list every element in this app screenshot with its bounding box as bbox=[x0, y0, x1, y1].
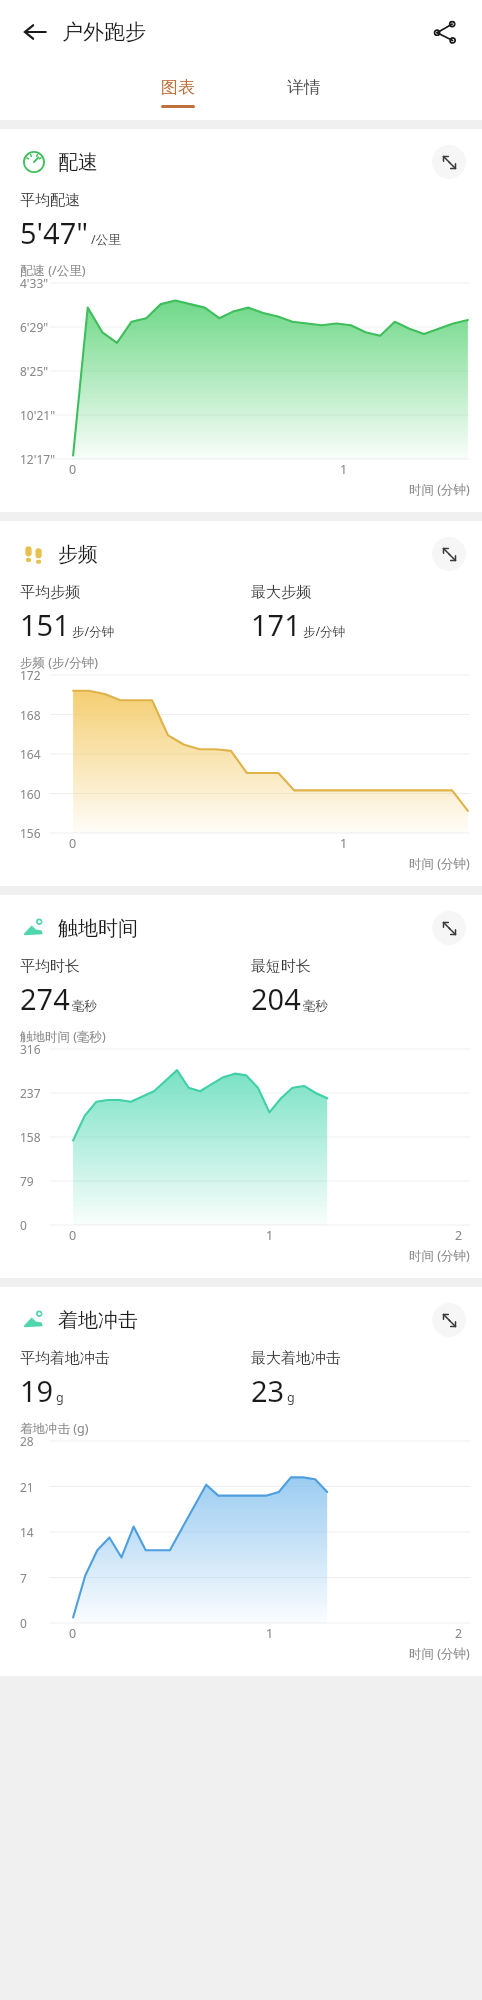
staticText: 图表 bbox=[161, 77, 195, 98]
staticText: 1 bbox=[340, 835, 348, 852]
staticText: 时间 (分钟) bbox=[409, 1645, 470, 1662]
staticText: 14 bbox=[20, 1524, 34, 1540]
staticText: 步频 bbox=[58, 542, 98, 567]
staticText: 时间 (分钟) bbox=[409, 855, 470, 872]
staticText: 毫秒 bbox=[303, 998, 328, 1014]
staticText: 21 bbox=[20, 1479, 34, 1495]
staticText: 时间 (分钟) bbox=[409, 481, 470, 498]
button[interactable]: 图表 bbox=[161, 77, 195, 108]
staticText: 28 bbox=[20, 1433, 34, 1449]
staticText: 158 bbox=[20, 1129, 41, 1145]
staticText: 配速 (/公里) bbox=[20, 262, 86, 279]
staticText: 79 bbox=[20, 1173, 34, 1189]
staticText: 平均着地冲击 bbox=[20, 1349, 110, 1368]
staticText: 最短时长 bbox=[251, 957, 311, 976]
staticText: 12'17" bbox=[20, 451, 56, 467]
staticText: 8'25" bbox=[20, 363, 49, 379]
staticText: 0 bbox=[69, 835, 77, 852]
staticText: 4'33" bbox=[20, 275, 49, 291]
staticText: 0 bbox=[20, 1615, 27, 1631]
staticText: g bbox=[287, 1389, 295, 1406]
staticText: 274 bbox=[20, 979, 70, 1018]
staticText: 最大步频 bbox=[251, 583, 311, 602]
staticText: 配速 bbox=[58, 150, 98, 175]
button[interactable]: Expand 触地时间 bbox=[432, 911, 466, 945]
staticText: 户外跑步 bbox=[62, 19, 146, 45]
staticText: 156 bbox=[20, 825, 41, 841]
staticText: 最大着地冲击 bbox=[251, 1349, 341, 1368]
staticText: 7 bbox=[20, 1570, 27, 1586]
staticText: 168 bbox=[20, 707, 41, 723]
staticText: 时间 (分钟) bbox=[409, 1247, 470, 1264]
staticText: /公里 bbox=[91, 231, 121, 248]
staticText: 1 bbox=[340, 461, 348, 478]
staticText: 151 bbox=[20, 605, 70, 644]
staticText: 0 bbox=[69, 461, 77, 478]
staticText: 0 bbox=[69, 1227, 77, 1244]
button[interactable]: Expand 着地冲击 bbox=[432, 1303, 466, 1337]
staticText: 19 bbox=[20, 1371, 54, 1410]
staticText: 316 bbox=[20, 1041, 41, 1057]
staticText: 172 bbox=[20, 667, 41, 683]
staticText: 步/分钟 bbox=[303, 623, 346, 640]
staticText: 平均步频 bbox=[20, 583, 80, 602]
staticText: 步/分钟 bbox=[72, 623, 115, 640]
staticText: g bbox=[56, 1389, 64, 1406]
staticText: 2 bbox=[455, 1625, 463, 1642]
staticText: 详情 bbox=[287, 77, 321, 98]
staticText: 171 bbox=[251, 605, 301, 644]
staticText: 23 bbox=[251, 1371, 285, 1410]
button[interactable]: Back bbox=[14, 11, 56, 53]
staticText: 0 bbox=[20, 1217, 27, 1233]
button[interactable]: Share bbox=[424, 11, 466, 53]
staticText: 触地时间 (毫秒) bbox=[20, 1028, 106, 1045]
staticText: 1 bbox=[266, 1227, 274, 1244]
staticText: 触地时间 bbox=[58, 916, 138, 941]
staticText: 160 bbox=[20, 786, 41, 802]
staticText: 0 bbox=[69, 1625, 77, 1642]
button[interactable]: Expand 步频 bbox=[432, 537, 466, 571]
staticText: 平均时长 bbox=[20, 957, 80, 976]
staticText: 5'47" bbox=[20, 213, 89, 252]
staticText: 1 bbox=[266, 1625, 274, 1642]
button[interactable]: Expand 配速 bbox=[432, 145, 466, 179]
staticText: 毫秒 bbox=[72, 998, 97, 1014]
staticText: 步频 (步/分钟) bbox=[20, 654, 98, 671]
staticText: 平均配速 bbox=[20, 191, 80, 210]
staticText: 6'29" bbox=[20, 319, 49, 335]
button[interactable]: 详情 bbox=[287, 77, 321, 98]
staticText: 204 bbox=[251, 979, 301, 1018]
staticText: 着地冲击 (g) bbox=[20, 1420, 89, 1437]
staticText: 2 bbox=[455, 1227, 463, 1244]
staticText: 10'21" bbox=[20, 407, 56, 423]
staticText: 着地冲击 bbox=[58, 1308, 138, 1333]
staticText: 237 bbox=[20, 1085, 41, 1101]
staticText: 164 bbox=[20, 746, 41, 762]
